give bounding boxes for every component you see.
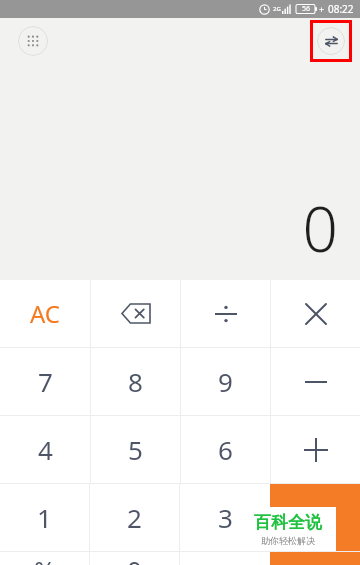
staticText: 9 [218, 364, 233, 399]
staticText: AC [30, 297, 61, 330]
button[interactable]: 1 [0, 484, 89, 551]
button[interactable]: 4 [0, 416, 90, 483]
staticText: 3 [218, 500, 233, 535]
staticText: 2 [127, 500, 142, 535]
button[interactable]: Convert units [310, 20, 352, 62]
staticText: 百科全说 [254, 512, 322, 533]
button[interactable]: Minus [271, 348, 360, 415]
button[interactable]: Plus [271, 416, 360, 483]
staticText: 7 [38, 364, 53, 399]
button[interactable]: Menu [18, 26, 48, 56]
staticText: 0 [302, 186, 338, 270]
button[interactable]: 5 [91, 416, 180, 483]
button[interactable]: 3 [180, 484, 270, 551]
staticText: 1 [37, 500, 52, 535]
button[interactable]: % [0, 552, 89, 565]
staticText: 4 [38, 432, 53, 467]
button[interactable]: 2 [90, 484, 179, 551]
staticText: 助你轻松解决 [261, 535, 315, 546]
button[interactable]: 8 [91, 348, 180, 415]
staticText: + [319, 3, 325, 15]
button[interactable]: Backspace [91, 280, 180, 347]
staticText: 5 [128, 432, 143, 467]
button[interactable]: Multiply [271, 280, 360, 347]
button[interactable]: Divide [181, 280, 270, 347]
staticText: 6 [218, 432, 233, 467]
staticText: 56 [302, 4, 311, 14]
button[interactable]: Equals [270, 484, 360, 551]
staticText: % [34, 552, 56, 565]
button[interactable]: AC [0, 280, 90, 347]
staticText: 2G [273, 5, 281, 13]
button[interactable]: 7 [0, 348, 90, 415]
button[interactable]: 9 [181, 348, 270, 415]
staticText: 8 [128, 364, 143, 399]
button[interactable]: 0 [90, 552, 179, 565]
staticText: 0 [127, 552, 142, 565]
staticText: 08:22 [328, 2, 354, 16]
button[interactable]: 6 [181, 416, 270, 483]
